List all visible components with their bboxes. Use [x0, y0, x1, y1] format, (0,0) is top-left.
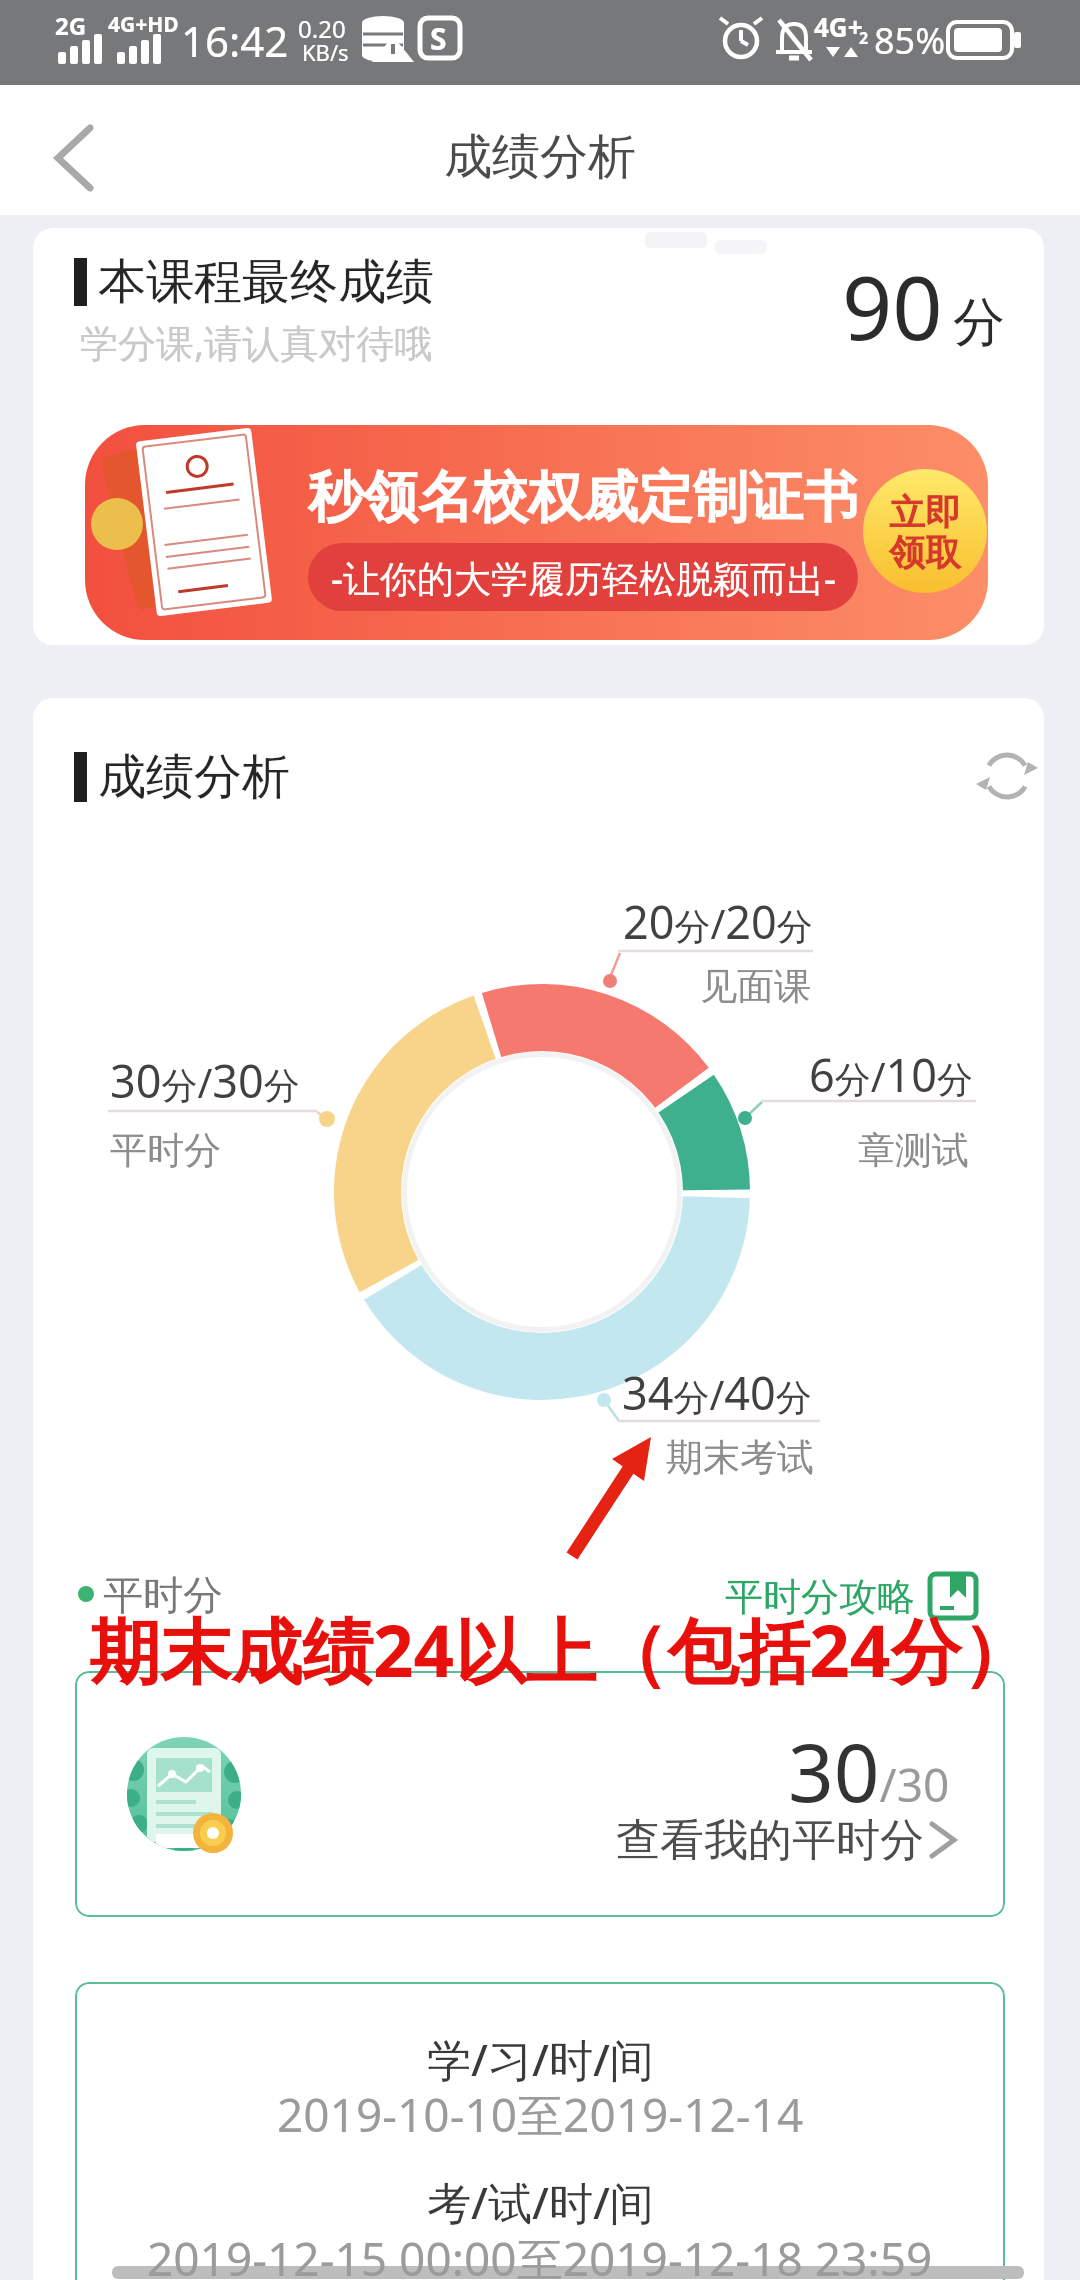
staticText: 秒领名校权威定制证书	[308, 463, 858, 532]
staticText: 6分/10分	[809, 1044, 974, 1105]
staticText: 学分课,请认真对待哦	[80, 316, 433, 368]
staticText: 34分/40分	[622, 1362, 812, 1423]
staticText: 85%	[874, 16, 946, 65]
staticText: KB/s	[302, 37, 349, 67]
staticText: 查看我的平时分	[616, 1813, 924, 1868]
staticText: 30分/30分	[110, 1050, 300, 1111]
button[interactable]	[30, 115, 130, 205]
staticText: 成绩分析	[444, 127, 636, 187]
staticText: -让你的大学履历轻松脱颖而出-	[331, 552, 836, 603]
staticText: 期末成绩24以上（包括24分）	[89, 1601, 1033, 1698]
staticText: 学/习/时/间	[427, 2029, 654, 2089]
staticText: 30/30	[788, 1716, 950, 1825]
staticText: 考/试/时/间	[427, 2172, 654, 2232]
staticText: 0.20	[298, 12, 346, 45]
staticText: 2019-10-10至2019-12-14	[277, 2083, 804, 2146]
staticText: 20分/20分	[623, 891, 813, 952]
staticText: 期末考试	[666, 1434, 814, 1481]
staticText: 见面课	[700, 963, 811, 1010]
staticText: 2	[859, 27, 869, 49]
staticText: 平时分	[110, 1127, 221, 1174]
staticText: 4G+	[814, 9, 863, 44]
staticText: 章测试	[858, 1127, 969, 1174]
staticText: 2G	[55, 9, 87, 42]
staticText: 平时分攻略	[725, 1573, 915, 1621]
staticText: 立即	[889, 490, 961, 535]
staticText: 领取	[889, 530, 961, 575]
staticText: 2019-12-15 00:00至2019-12-18 23:59	[147, 2227, 933, 2280]
staticText: 16:42	[181, 12, 289, 69]
button[interactable]	[750, 1565, 980, 1625]
button[interactable]	[75, 1671, 1005, 1917]
button[interactable]	[975, 745, 1039, 809]
staticText: 90 分	[842, 246, 1006, 366]
button[interactable]	[85, 425, 988, 640]
staticText: 本课程最终成绩	[98, 252, 434, 312]
staticText: 成绩分析	[98, 747, 290, 807]
staticText: 4G+HD	[108, 10, 179, 39]
staticText: S	[430, 18, 447, 59]
staticText: 平时分	[103, 1570, 223, 1620]
